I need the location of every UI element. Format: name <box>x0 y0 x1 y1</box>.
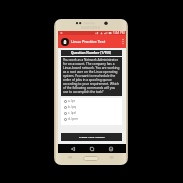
button[interactable]: More options <box>120 35 126 48</box>
button[interactable]: Home <box>88 145 96 153</box>
button[interactable]: d. lprm <box>61 116 122 122</box>
staticText: SUBMIT YOUR ANSWER <box>79 136 105 139</box>
button[interactable]: Recent apps <box>107 145 115 153</box>
staticText: SAMSUNG <box>81 25 101 30</box>
button[interactable]: b. lpq <box>61 104 122 110</box>
staticText: d. lprm <box>68 117 79 121</box>
staticText: You work as a Network Administrator for … <box>63 58 121 94</box>
button[interactable]: SUBMIT YOUR ANSWER <box>61 133 122 141</box>
button[interactable]: c. lpd <box>61 110 122 116</box>
staticText: 1:34 PM <box>113 31 125 35</box>
staticText: a. lpr <box>68 99 76 103</box>
staticText: Question Number (1/150) <box>71 51 112 55</box>
button[interactable]: a. lpr <box>61 98 122 104</box>
staticText: b. lpq <box>68 105 76 109</box>
button[interactable]: Back <box>69 145 77 153</box>
staticText: Linux Practice Test <box>71 39 106 44</box>
staticText: c. lpd <box>68 111 76 115</box>
